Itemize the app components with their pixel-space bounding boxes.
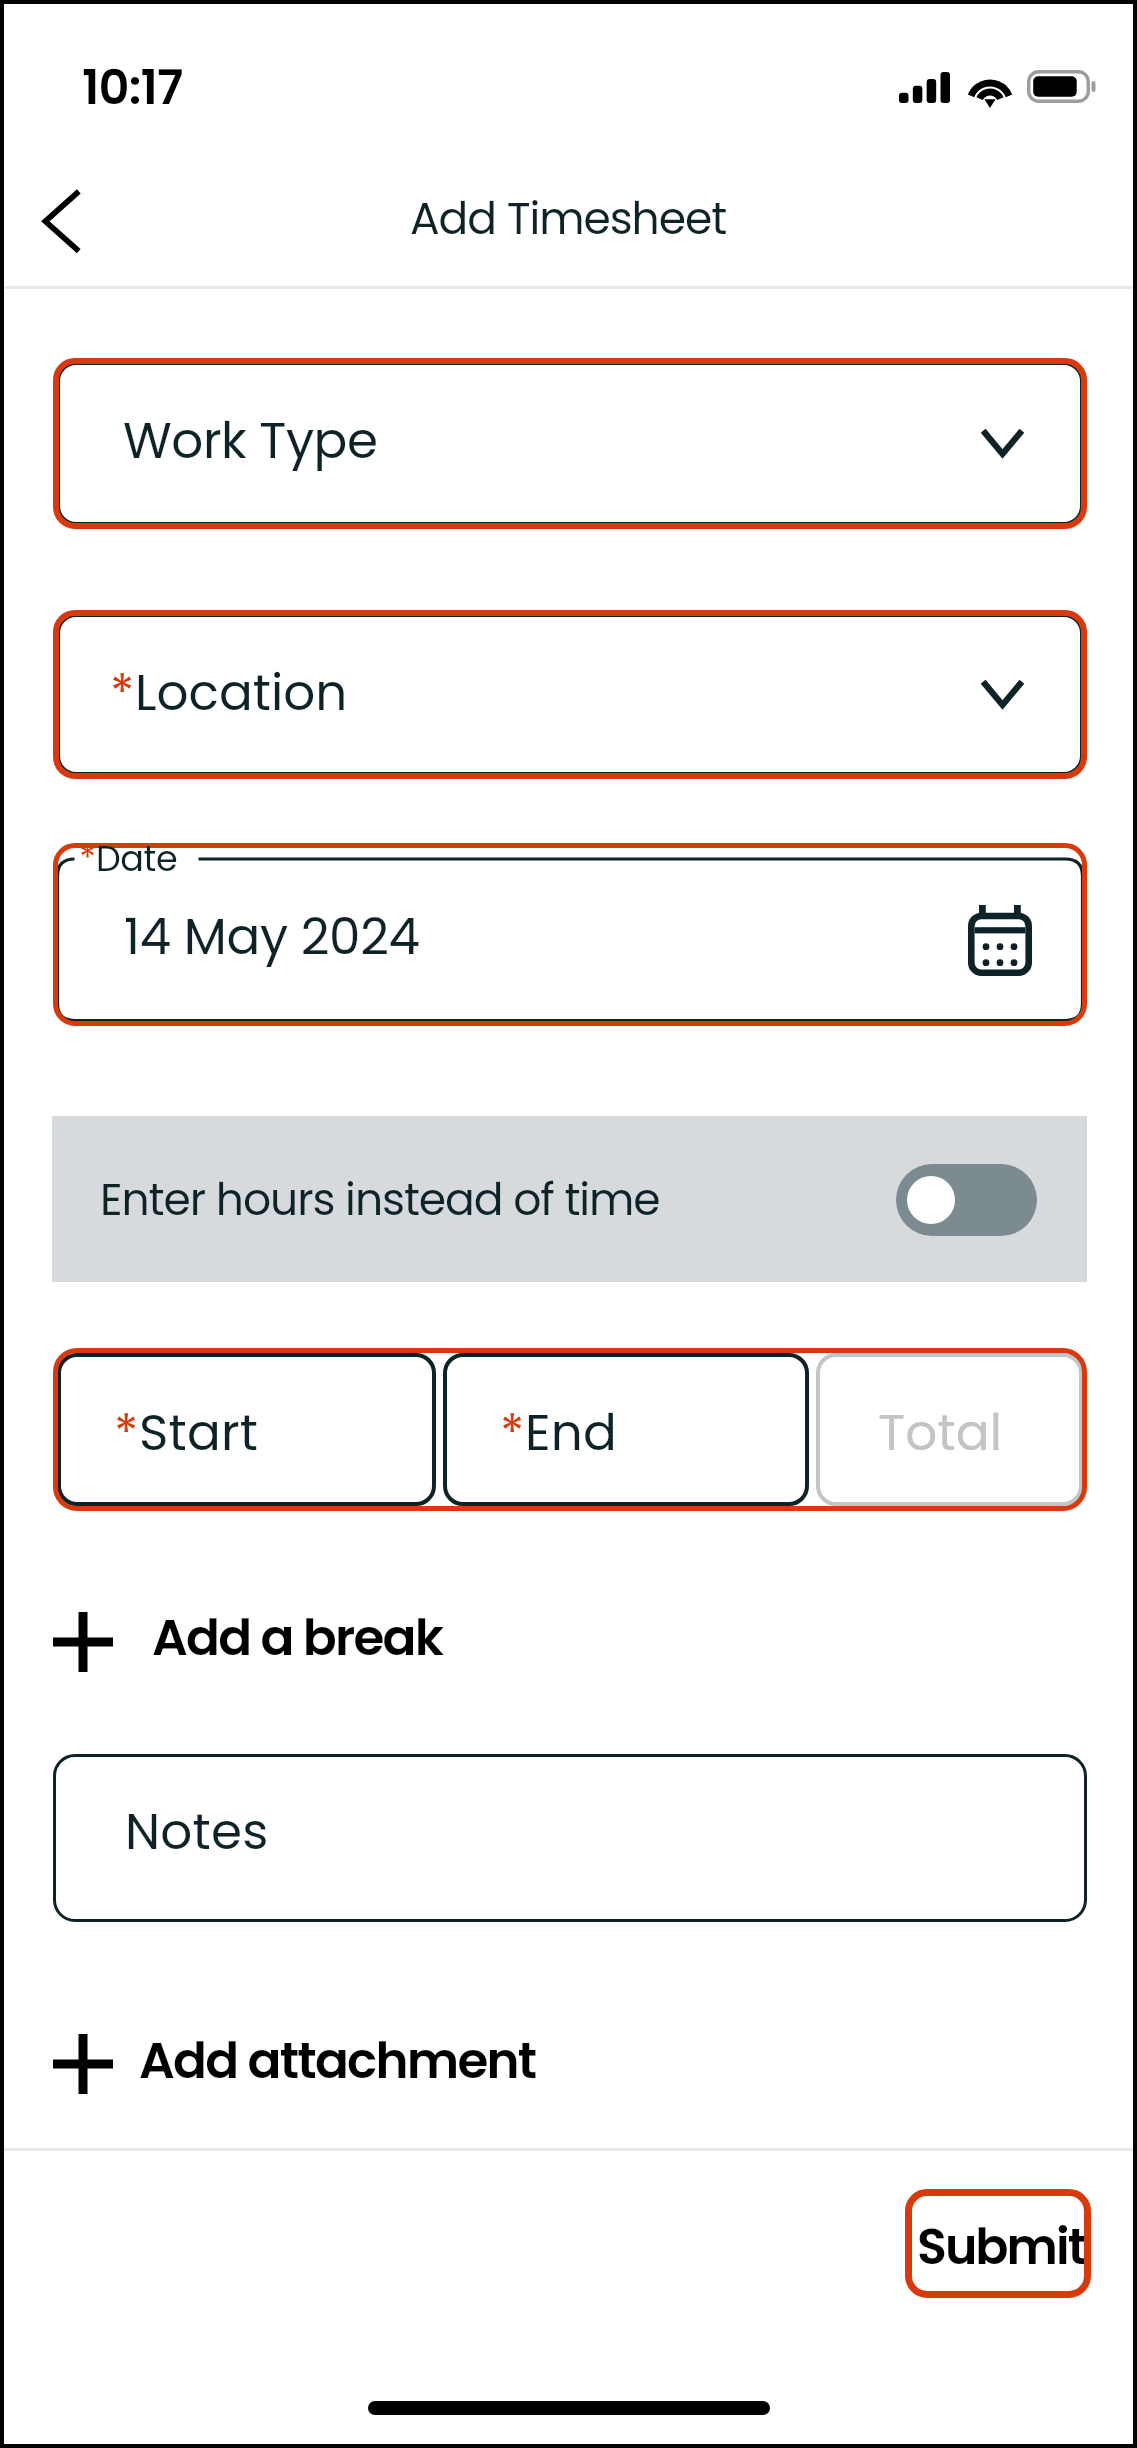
- staticText: 14 May 2024: [124, 902, 420, 972]
- button[interactable]: Enter hours instead of time: [52, 1116, 1087, 1282]
- staticText: Start: [139, 1398, 259, 1468]
- staticText: Work Type: [123, 406, 378, 476]
- button[interactable]: *: [53, 843, 1087, 1026]
- staticText: 10:17: [82, 54, 183, 121]
- staticText: Location: [135, 658, 348, 728]
- staticText: Notes: [125, 1797, 269, 1867]
- staticText: End: [525, 1398, 618, 1468]
- button[interactable]: Work Type: [53, 358, 1087, 529]
- staticText: Enter hours instead of time: [100, 1169, 660, 1231]
- button[interactable]: Add attachment: [40, 2009, 1020, 2119]
- button[interactable]: *: [443, 1353, 809, 1506]
- button[interactable]: Add a break: [40, 1587, 1020, 1697]
- button[interactable]: Submit: [905, 2189, 1091, 2298]
- staticText: Date: [96, 834, 178, 883]
- staticText: Add a break: [152, 1603, 443, 1673]
- staticText: Total: [878, 1398, 1003, 1468]
- staticText: *: [110, 658, 135, 728]
- staticText: Submit: [917, 2213, 1085, 2282]
- button[interactable]: *: [53, 610, 1087, 779]
- staticText: Add Timesheet: [410, 188, 727, 250]
- staticText: *: [500, 1398, 525, 1468]
- button[interactable]: Back: [22, 177, 102, 266]
- staticText: *: [114, 1398, 139, 1468]
- button[interactable]: Notes: [53, 1754, 1087, 1922]
- button[interactable]: *: [57, 1353, 436, 1506]
- staticText: Add attachment: [139, 2026, 536, 2096]
- staticText: *: [79, 834, 96, 883]
